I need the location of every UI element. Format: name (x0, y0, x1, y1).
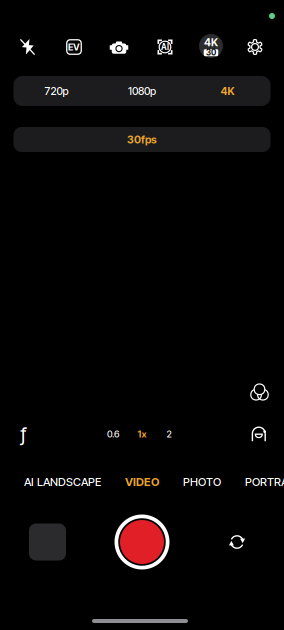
staticText: 30 (206, 48, 216, 58)
staticText: PHOTO (183, 475, 221, 489)
staticText: 2 (166, 428, 171, 440)
button[interactable]: Flash off (10, 32, 44, 62)
staticText: 1x (137, 428, 146, 440)
staticText: 0.6 (107, 428, 119, 440)
button[interactable]: 720p (14, 76, 99, 106)
staticText: EV (68, 41, 80, 53)
button[interactable]: Last capture (29, 523, 66, 560)
button[interactable]: VIDEO (125, 475, 159, 489)
button[interactable]: 1080p (99, 76, 185, 106)
staticText: AI LANDSCAPE (24, 475, 101, 489)
button[interactable]: 0.6 (101, 424, 125, 444)
button[interactable]: Beauty (244, 420, 274, 448)
staticText: VIDEO (125, 475, 159, 489)
button[interactable]: Camera mode (102, 32, 136, 62)
button[interactable]: Exposure compensation (57, 32, 91, 62)
button[interactable]: Settings (238, 32, 272, 62)
button[interactable]: 4K 30 fps (194, 31, 228, 61)
button[interactable]: Filters (244, 378, 274, 406)
staticText: ƒ (20, 422, 27, 446)
button[interactable]: 30fps (13, 127, 270, 152)
button[interactable]: 1x (131, 424, 153, 444)
button[interactable]: 4K (185, 76, 270, 106)
staticText: 1080p (128, 84, 156, 97)
button[interactable]: AI LANDSCAPE (24, 475, 101, 489)
button[interactable]: PORTRAIT (245, 475, 284, 489)
staticText: PORTRAIT (245, 475, 284, 489)
staticText: 4K (204, 36, 218, 49)
button[interactable]: Record (114, 514, 170, 570)
staticText: 4K (221, 84, 235, 97)
staticText: AI (161, 42, 169, 52)
button[interactable]: Switch camera (220, 525, 254, 559)
button[interactable]: PHOTO (183, 475, 221, 489)
staticText: 30fps (127, 133, 157, 146)
button[interactable]: Aperture (9, 421, 37, 447)
staticText: 720p (44, 84, 68, 97)
button[interactable]: AI scene detection (148, 32, 182, 62)
button[interactable]: 2 (159, 424, 179, 444)
